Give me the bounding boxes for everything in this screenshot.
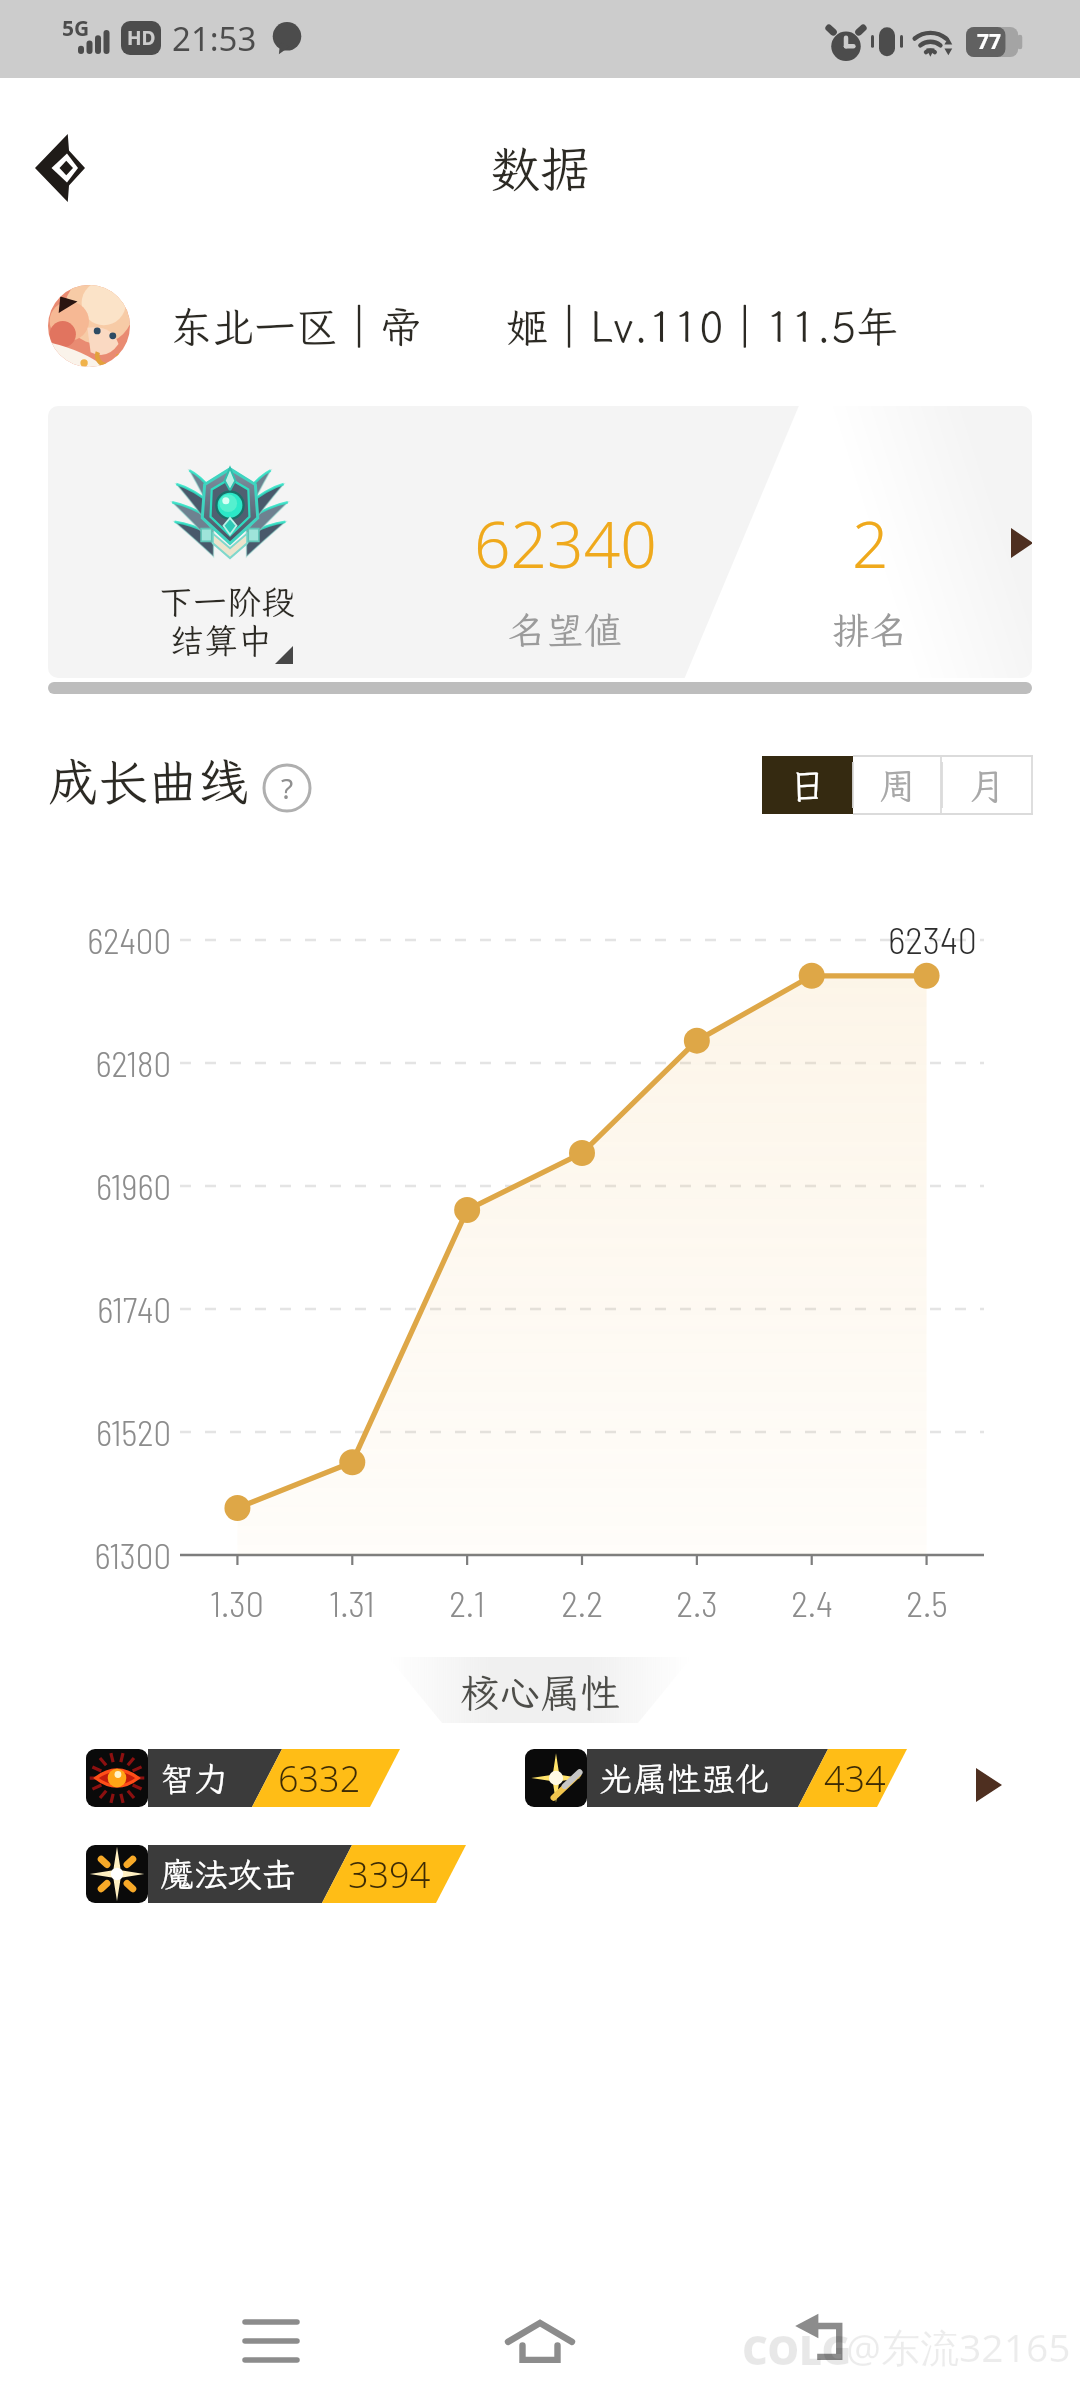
staticText: 61740 (97, 1288, 171, 1330)
staticText: 62340 (474, 500, 657, 576)
staticText: 61960 (95, 1165, 171, 1207)
staticText: 日 (789, 761, 826, 810)
staticText: 2.5 (906, 1581, 948, 1624)
staticText: HD (127, 25, 156, 51)
staticText: 61300 (94, 1534, 171, 1576)
staticText: 61520 (95, 1411, 171, 1453)
staticText: COLG (742, 2322, 852, 2376)
button[interactable]: Back (768, 2282, 878, 2392)
staticText: ? (281, 769, 294, 807)
staticText: 结算中 (170, 618, 272, 663)
staticText: 2 (852, 500, 889, 576)
button[interactable]: 光属性强化 (525, 1749, 877, 1807)
button[interactable]: Back (14, 120, 106, 216)
staticText: 2.3 (676, 1581, 718, 1624)
button[interactable]: More attributes (958, 1748, 1020, 1822)
staticText: 东北一区｜帝 姬｜Lv.110｜11.5年 (170, 299, 899, 354)
staticText: 月 (969, 761, 1006, 810)
button[interactable]: Help (262, 763, 312, 813)
staticText: 21:53 (172, 16, 257, 61)
button[interactable]: 日 (762, 756, 853, 814)
staticText: 光属性强化 (599, 1756, 769, 1801)
staticText: 6332 (278, 1754, 361, 1803)
button[interactable]: More rank details (994, 512, 1032, 574)
staticText: 核心属性 (460, 1666, 620, 1719)
button[interactable]: 月 (942, 756, 1033, 814)
button[interactable]: 周 (853, 756, 942, 814)
button[interactable]: 智力 (86, 1749, 370, 1807)
button[interactable]: 下一阶段 (48, 406, 1032, 678)
staticText: @东流32165 (846, 2320, 1071, 2373)
staticText: 62400 (87, 919, 171, 961)
staticText: 2.2 (561, 1581, 603, 1624)
button[interactable]: 魔法攻击 (86, 1845, 436, 1903)
staticText: 1.30 (210, 1581, 264, 1624)
button[interactable]: 东北一区｜帝 姬｜Lv.110｜11.5年 (40, 278, 1055, 374)
staticText: 62340 (888, 916, 977, 962)
staticText: 3394 (348, 1850, 431, 1899)
staticText: 434 (824, 1754, 886, 1803)
staticText: 5G (62, 14, 90, 43)
staticText: 成长曲线 (48, 748, 248, 814)
staticText: 智力 (160, 1756, 228, 1801)
button[interactable]: Recent apps (216, 2282, 326, 2392)
staticText: 周 (879, 761, 916, 810)
staticText: 数据 (490, 135, 590, 201)
staticText: 名望值 (508, 605, 623, 655)
staticText: 77 (977, 27, 1002, 56)
staticText: 排名 (832, 605, 909, 655)
staticText: 下一阶段 (159, 579, 295, 624)
staticText: 魔法攻击 (160, 1852, 296, 1897)
staticText: 2.4 (791, 1581, 833, 1624)
staticText: 1.31 (329, 1581, 375, 1624)
staticText: 2.1 (449, 1581, 485, 1624)
staticText: 62180 (95, 1042, 171, 1084)
button[interactable]: Home (485, 2282, 595, 2392)
